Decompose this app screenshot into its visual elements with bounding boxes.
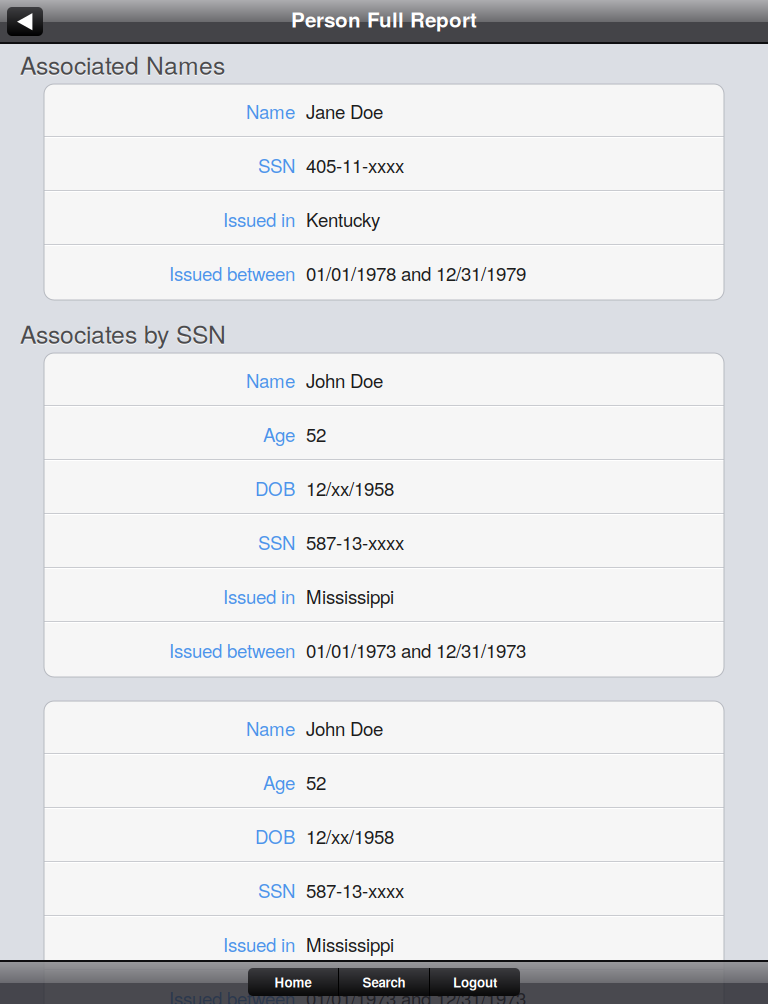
button[interactable]: Back	[7, 7, 43, 36]
staticText: 405-11-xxxx	[306, 152, 404, 178]
staticText: Jane Doe	[306, 98, 383, 124]
staticText: Logout	[453, 972, 497, 992]
staticText: DOB	[255, 823, 295, 849]
staticText: 01/01/1973 and 12/31/1973	[306, 637, 526, 663]
staticText: Name	[246, 367, 295, 393]
staticText: Associates by SSN	[20, 315, 226, 351]
staticText: 52	[306, 421, 326, 447]
staticText: Search	[362, 972, 405, 992]
staticText: 12/xx/1958	[306, 475, 394, 501]
button[interactable]: Logout	[430, 968, 520, 996]
staticText: Issued between	[169, 637, 295, 663]
staticText: Age	[263, 421, 295, 447]
staticText: Associates by SSN	[20, 316, 226, 352]
staticText: John Doe	[306, 715, 383, 741]
staticText: SSN	[258, 529, 295, 555]
staticText: 01/01/1978 and 12/31/1979	[306, 260, 526, 286]
staticText: Home	[274, 972, 311, 992]
staticText: 01/01/1973 and 12/31/1973	[306, 985, 526, 1004]
staticText: Name	[246, 98, 295, 124]
staticText: SSN	[258, 152, 295, 178]
staticText: Issued in	[223, 583, 295, 609]
staticText: Issued in	[223, 206, 295, 232]
staticText: DOB	[255, 475, 295, 501]
staticText: Mississippi	[306, 583, 394, 609]
staticText: 587-13-xxxx	[306, 877, 404, 903]
staticText: Associated Names	[20, 46, 225, 82]
staticText: Age	[263, 769, 295, 795]
staticText: John Doe	[306, 367, 383, 393]
staticText: SSN	[258, 877, 295, 903]
staticText: Kentucky	[306, 206, 380, 232]
staticText: 587-13-xxxx	[306, 529, 404, 555]
staticText: Mississippi	[306, 931, 394, 957]
button[interactable]: Home	[248, 968, 338, 996]
staticText: Person Full Report	[291, 4, 477, 34]
staticText: Issued between	[169, 985, 295, 1004]
staticText: 52	[306, 769, 326, 795]
staticText: Issued between	[169, 260, 295, 286]
staticText: 12/xx/1958	[306, 823, 394, 849]
staticText: Name	[246, 715, 295, 741]
button[interactable]: Search	[339, 968, 429, 996]
staticText: Issued in	[223, 931, 295, 957]
staticText: Associated Names	[20, 47, 225, 83]
